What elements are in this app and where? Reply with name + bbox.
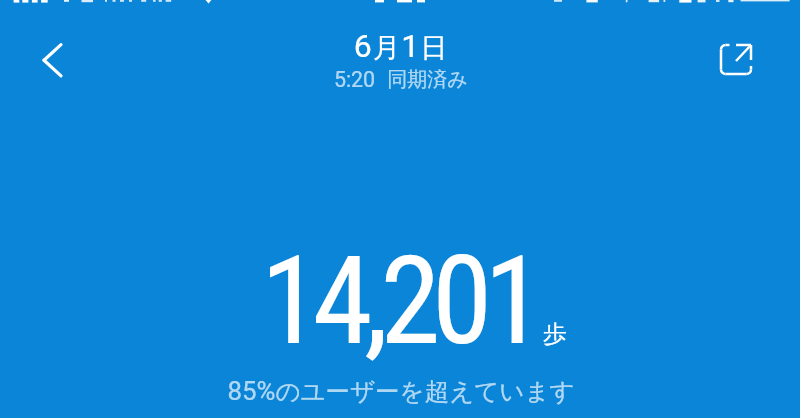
button[interactable]: Share — [706, 30, 766, 90]
button[interactable]: Back — [22, 40, 82, 80]
